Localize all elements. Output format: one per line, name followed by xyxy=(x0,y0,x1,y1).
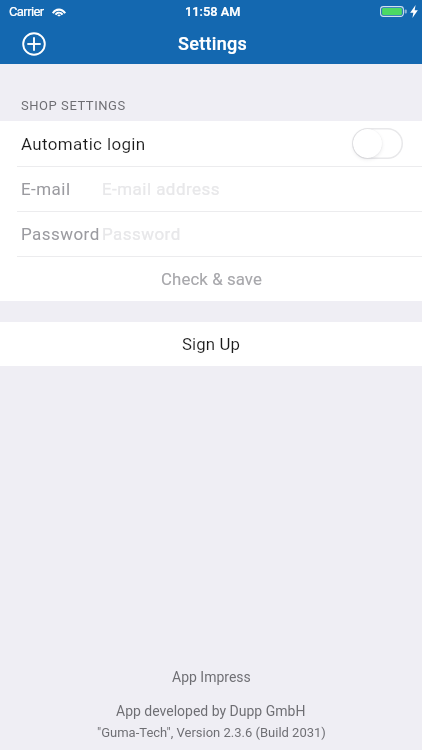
button[interactable]: App Impress xyxy=(172,669,251,685)
button[interactable]: Password xyxy=(0,212,422,256)
button[interactable]: Automatic login toggle xyxy=(352,128,403,159)
staticText: Carrier xyxy=(9,4,44,19)
staticText: Automatic login xyxy=(21,134,146,154)
staticText: E-mail address xyxy=(102,179,220,199)
button[interactable]: Check & save xyxy=(0,257,422,301)
staticText: 11:58 AM xyxy=(185,4,241,19)
staticText: Password xyxy=(21,224,102,244)
staticText: Check & save xyxy=(161,269,262,289)
button[interactable]: Sign Up xyxy=(0,322,422,366)
button[interactable]: Add xyxy=(15,24,53,62)
staticText: Password xyxy=(102,224,181,244)
staticText: "Guma-Tech", Version 2.3.6 (Build 2031) xyxy=(97,725,326,740)
staticText: App developed by Dupp GmbH xyxy=(116,703,306,719)
button[interactable]: E-mail xyxy=(0,167,422,211)
staticText: E-mail xyxy=(21,179,102,199)
button[interactable]: Automatic login xyxy=(0,121,422,166)
staticText: Settings xyxy=(178,33,248,54)
staticText: SHOP SETTINGS xyxy=(21,98,126,113)
staticText: Sign Up xyxy=(182,334,240,354)
